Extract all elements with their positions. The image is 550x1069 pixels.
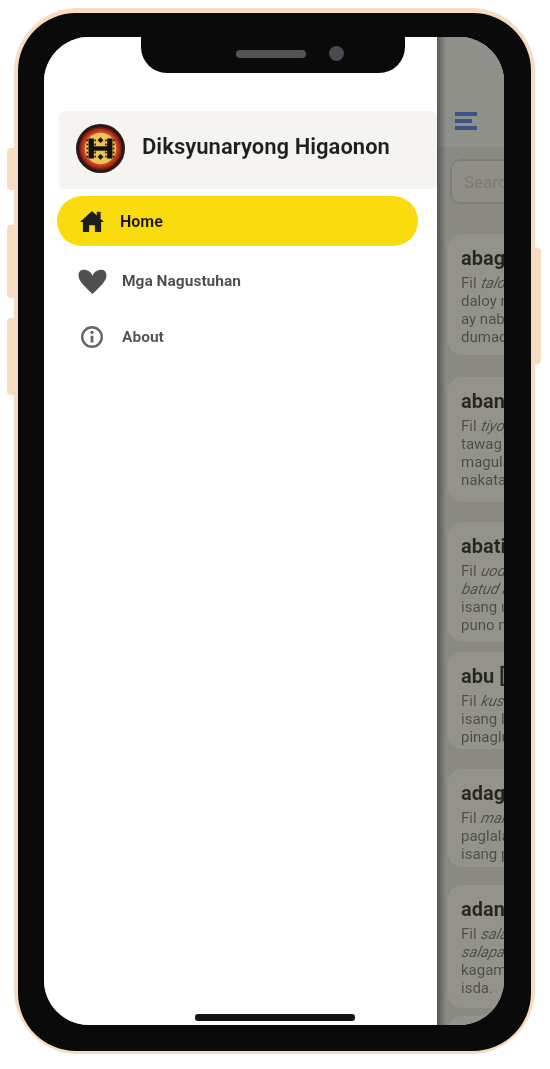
button[interactable]: adanu	[447, 885, 504, 1008]
staticText: Search	[464, 172, 504, 192]
staticText: Fil tiyogo	[461, 417, 504, 435]
staticText: dumadal	[461, 328, 504, 346]
button[interactable]: abaga	[447, 234, 504, 355]
staticText: Home	[120, 212, 163, 231]
staticText: adaga	[461, 781, 504, 804]
button[interactable]	[447, 1016, 504, 1025]
button[interactable]: adaga	[447, 769, 504, 867]
button[interactable]: Home	[57, 196, 418, 246]
staticText: About	[122, 328, 164, 346]
button[interactable]: abu [a	[447, 652, 504, 749]
staticText: isang p	[461, 845, 504, 863]
staticText: Fil talod n	[461, 274, 504, 292]
staticText: Fil uod, a	[461, 562, 504, 580]
staticText: batud n	[461, 580, 504, 598]
staticText: paglala	[461, 827, 504, 845]
staticText: ay nabu	[461, 310, 504, 328]
staticText: salapan	[461, 943, 504, 961]
staticText: aband	[461, 389, 504, 412]
button[interactable]: Mga Nagustuhan	[78, 266, 358, 295]
button[interactable]: About	[81, 325, 361, 348]
staticText: abatid	[461, 534, 504, 557]
staticText: Diksyunaryong Higaonon	[142, 134, 390, 160]
staticText: Fil kusina	[461, 692, 504, 710]
staticText: isda.	[461, 979, 493, 997]
button[interactable]: aband	[447, 377, 504, 502]
staticText: Fil manga	[461, 809, 504, 827]
button[interactable]: Search	[450, 159, 504, 204]
staticText: Mga Nagustuhan	[122, 272, 241, 290]
staticText: nakatat	[461, 471, 504, 489]
staticText: Fil salap.	[461, 925, 504, 943]
staticText: isang lu	[461, 710, 504, 728]
staticText: kagam	[461, 961, 504, 979]
staticText: abu [a	[461, 664, 504, 687]
staticText: daloy ng t	[461, 292, 504, 310]
staticText: pinaglu	[461, 728, 504, 746]
staticText: isang u	[461, 598, 504, 616]
staticText: abaga	[461, 246, 504, 269]
staticText: adanu	[461, 897, 504, 920]
button[interactable]	[448, 105, 486, 139]
staticText: magula	[461, 453, 504, 471]
staticText: puno ng	[461, 616, 504, 634]
button[interactable]: abatid	[447, 522, 504, 642]
staticText: tawag s	[461, 435, 504, 453]
